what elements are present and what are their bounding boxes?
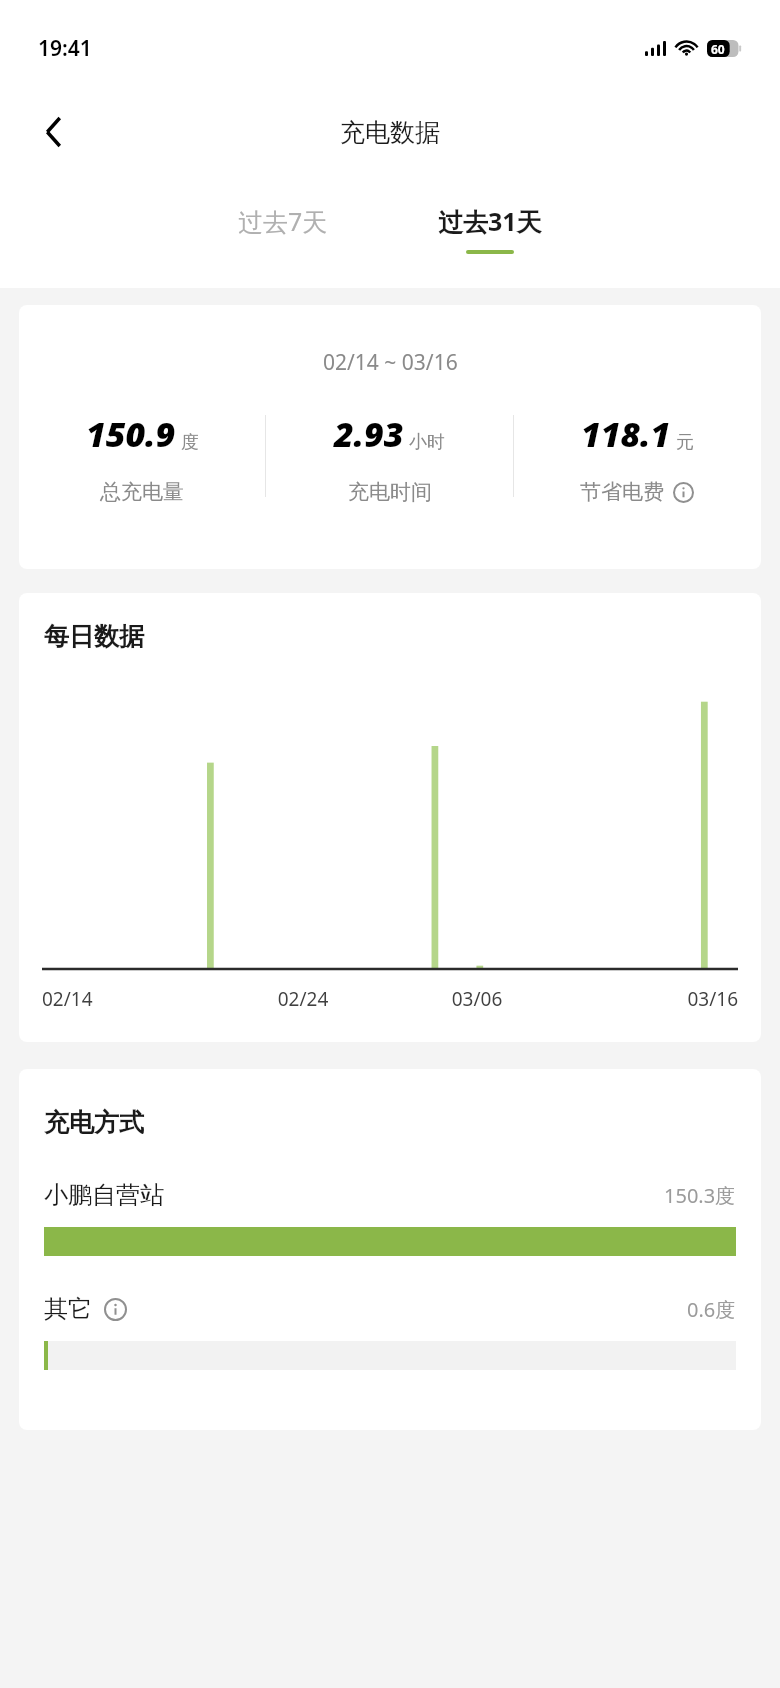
button[interactable]: Info about saved cost [671,480,695,504]
staticText: 充电时间 [348,479,432,505]
staticText: 节省电费 [580,479,664,505]
staticText: 过去7天 [238,204,328,238]
button[interactable]: 其它 [19,1294,761,1370]
staticText: 充电方式 [44,1107,144,1138]
staticText: 118.1 [581,411,671,457]
staticText: 02/14 ~ 03/16 [323,348,458,377]
button[interactable]: 过去7天 [226,200,340,258]
staticText: 充电数据 [340,117,440,148]
staticText: 02/14 [42,986,216,1012]
staticText: 2.93 [334,411,404,457]
staticText: 150.3度 [664,1182,736,1209]
staticText: 02/24 [216,986,390,1012]
staticText: 150.9 [86,411,176,457]
staticText: 总充电量 [100,479,184,505]
staticText: 其它 [44,1294,92,1324]
staticText: 60 [711,41,725,57]
staticText: 过去31天 [438,204,542,238]
button[interactable]: 小鹏自营站 [19,1180,761,1256]
staticText: 0.6度 [687,1296,736,1323]
staticText: 03/16 [564,986,738,1012]
button[interactable]: Back [26,104,82,160]
staticText: 元 [676,431,694,454]
staticText: 03/06 [390,986,564,1012]
other: Info about other charging [102,1296,128,1322]
staticText: 小时 [409,431,445,454]
staticText: 小鹏自营站 [44,1180,164,1210]
staticText: 度 [181,431,199,454]
staticText: 每日数据 [44,621,144,652]
staticText: 19:41 [38,34,92,63]
button[interactable]: 过去31天 [426,200,554,258]
